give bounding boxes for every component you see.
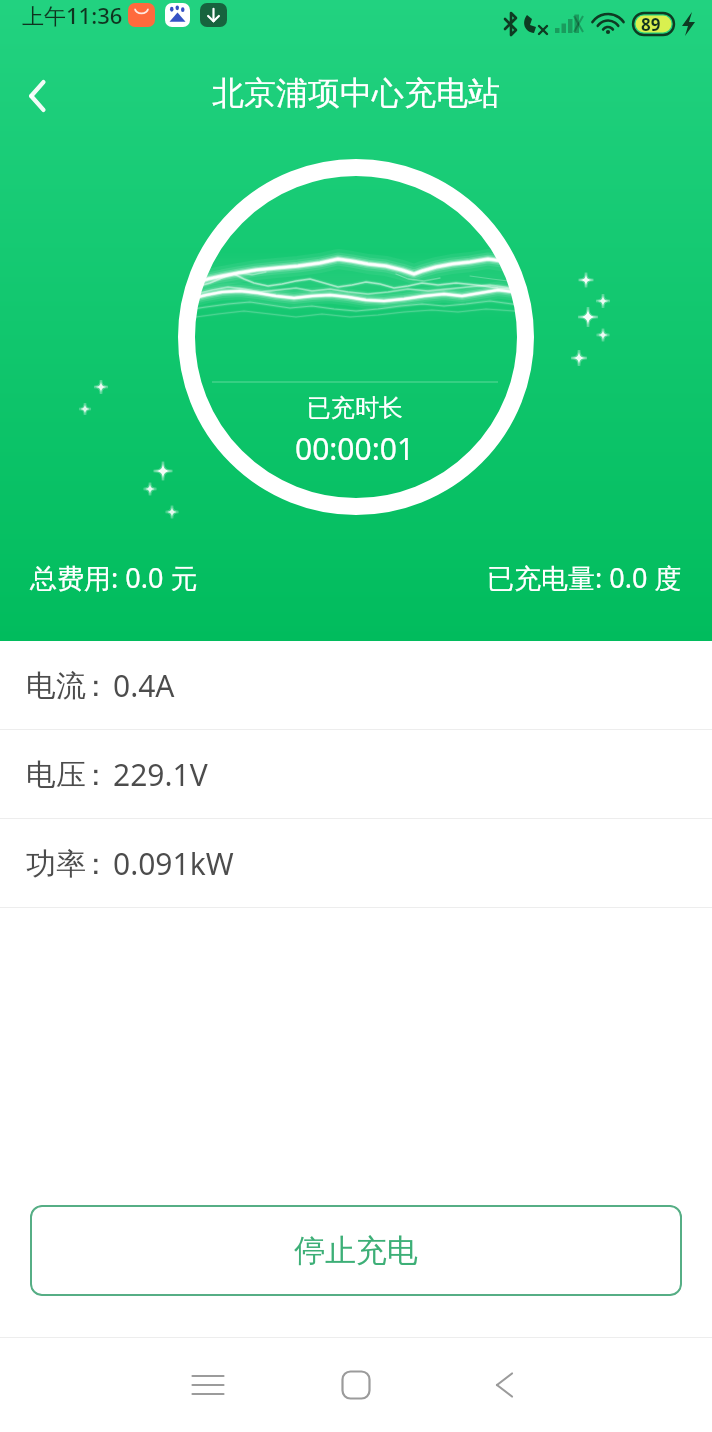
staticText: 上午11:36	[22, 0, 123, 30]
staticText: 电流	[26, 667, 86, 705]
staticText: 229.1V	[113, 754, 208, 795]
staticText: 89	[641, 13, 661, 36]
button[interactable]: Back	[5, 63, 71, 129]
button[interactable]: 电压	[0, 730, 712, 818]
staticText: 功率	[26, 845, 86, 883]
button[interactable]: 停止充电	[30, 1205, 682, 1296]
button[interactable]: 功率	[0, 819, 712, 907]
staticText: ：	[81, 756, 108, 794]
button[interactable]: Recent apps	[160, 1338, 256, 1432]
button[interactable]: 电流	[0, 641, 712, 729]
staticText: 0.4A	[113, 665, 175, 706]
staticText: 电压	[26, 756, 86, 794]
staticText: ：	[81, 845, 108, 883]
button[interactable]: Back	[456, 1338, 552, 1432]
staticText: 总费用: 0.0 元	[30, 559, 198, 596]
staticText: 已充时长	[307, 393, 403, 423]
staticText: ：	[81, 667, 108, 705]
staticText: 0.091kW	[113, 843, 234, 884]
staticText: 北京浦项中心充电站	[212, 73, 500, 113]
staticText: 停止充电	[294, 1231, 418, 1270]
staticText: 00:00:01	[295, 428, 415, 469]
staticText: 已充电量: 0.0 度	[487, 559, 682, 596]
button[interactable]: Home	[308, 1338, 404, 1432]
